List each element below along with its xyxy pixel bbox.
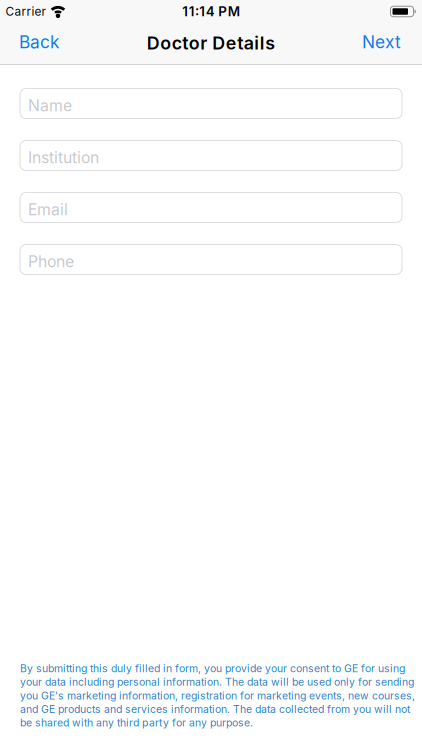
staticText: be shared with any third party for any p… <box>20 716 253 729</box>
staticText: Institution <box>28 148 99 167</box>
staticText: By submitting this duly filled in form, … <box>20 662 405 675</box>
staticText: your data including personal information… <box>20 676 414 688</box>
button[interactable]: Name <box>20 88 402 118</box>
staticText: Carrier <box>5 4 45 19</box>
staticText: Next <box>362 31 401 52</box>
staticText: Back <box>19 31 59 52</box>
button[interactable]: Email <box>20 192 402 222</box>
button[interactable]: Back <box>19 31 59 52</box>
staticText: Phone <box>28 252 74 271</box>
button[interactable]: Phone <box>20 244 402 274</box>
button[interactable]: Institution <box>20 140 402 170</box>
staticText: Name <box>28 96 72 115</box>
staticText: Email <box>28 200 68 219</box>
button[interactable]: Next <box>362 31 401 52</box>
staticText: 11:14 PM <box>182 3 240 20</box>
staticText: Doctor Details <box>147 32 275 54</box>
staticText: and GE products and services information… <box>20 703 410 715</box>
staticText: you GE's marketing information, registra… <box>20 689 415 702</box>
